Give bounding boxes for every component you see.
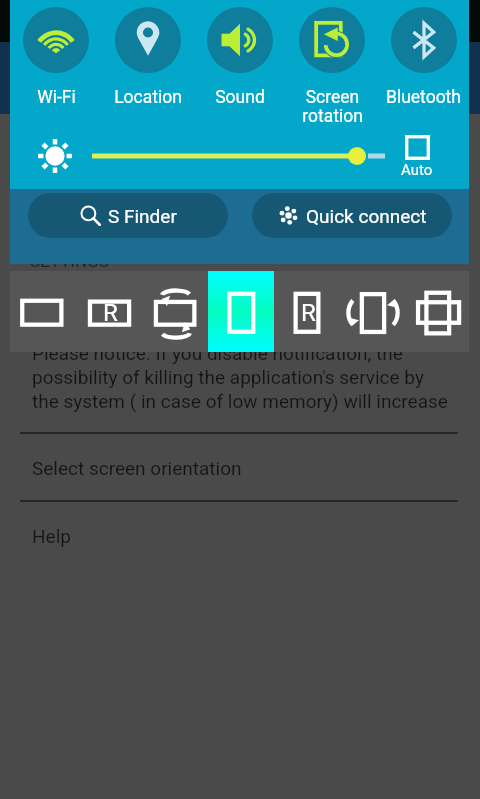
- staticText: Sound: [215, 87, 265, 108]
- button[interactable]: Auto rotate: [406, 271, 469, 352]
- button[interactable]: Landscape: [10, 271, 76, 352]
- staticText: Auto: [401, 161, 433, 179]
- button[interactable]: Quick connect: [252, 193, 452, 238]
- staticText: Screen rotation: [302, 87, 363, 127]
- button[interactable]: Select screen orientation: [0, 434, 480, 501]
- button[interactable]: Auto landscape: [142, 271, 208, 352]
- button[interactable]: Location: [102, 0, 194, 108]
- staticText: R: [301, 299, 316, 327]
- button[interactable]: Wi-Fi: [10, 0, 102, 108]
- staticText: Location: [114, 87, 182, 108]
- staticText: Help: [32, 525, 71, 547]
- button[interactable]: Reverse portrait: [274, 271, 340, 352]
- staticText: S Finder: [108, 205, 177, 227]
- staticText: Select screen orientation: [32, 457, 242, 479]
- button[interactable]: Help: [0, 502, 480, 569]
- button[interactable]: Bluetooth: [378, 0, 469, 108]
- staticText: Quick connect: [306, 205, 427, 227]
- button[interactable]: S Finder: [28, 193, 228, 238]
- button[interactable]: Reverse landscape: [76, 271, 142, 352]
- staticText: Please notice. If you disable notificati…: [32, 342, 448, 412]
- staticText: R: [103, 299, 118, 327]
- button[interactable]: Sound: [194, 0, 286, 108]
- button[interactable]: Auto portrait: [340, 271, 406, 352]
- button[interactable]: Portrait: [208, 271, 274, 352]
- staticText: Bluetooth: [386, 87, 461, 108]
- staticText: SETTINGS: [30, 251, 109, 271]
- staticText: Wi-Fi: [37, 87, 76, 108]
- button[interactable]: Auto brightness: [401, 135, 433, 179]
- button[interactable]: Screen rotation: [286, 0, 378, 127]
